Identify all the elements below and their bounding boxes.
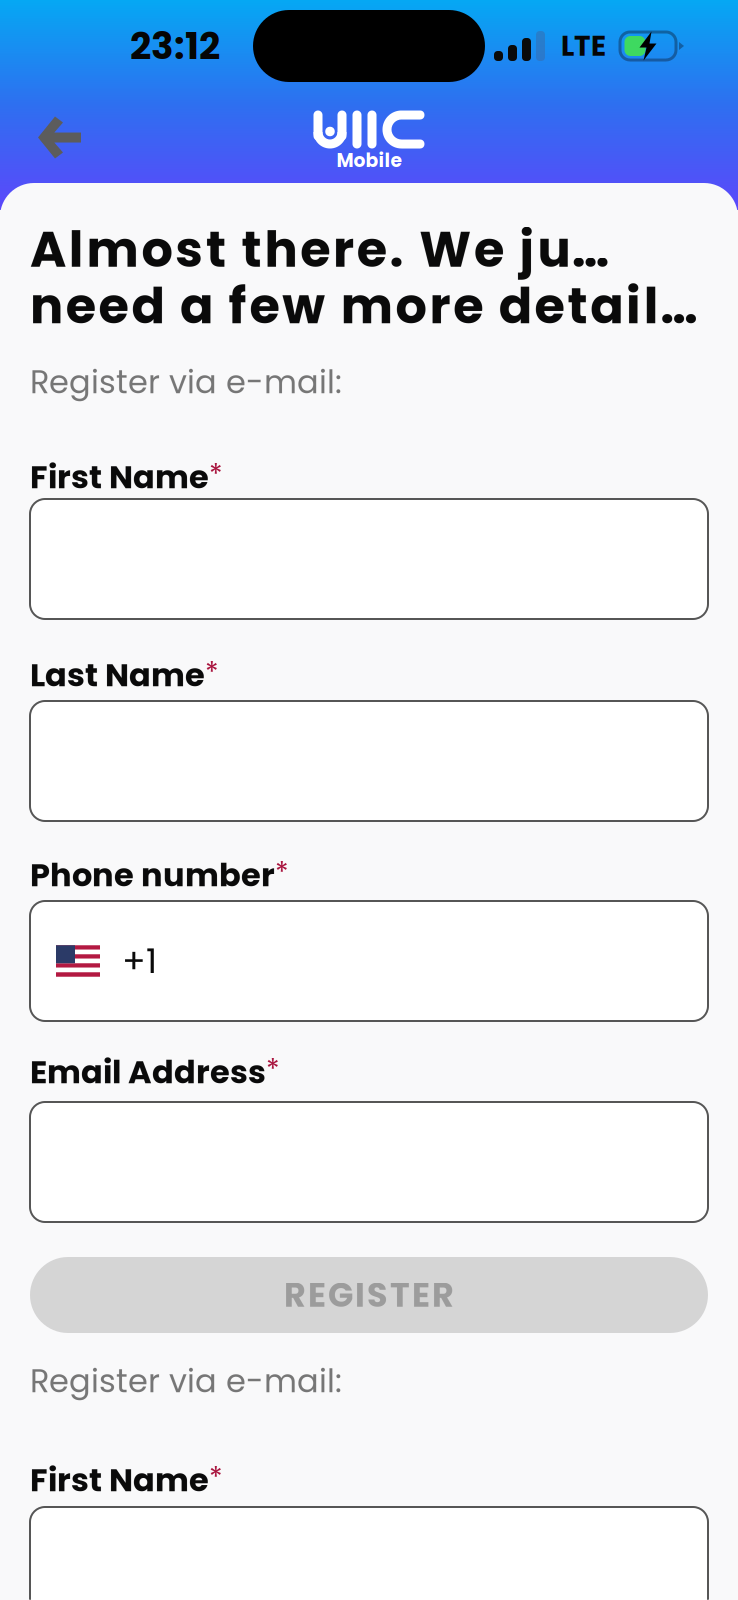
staticText: Almost there. We just <box>30 215 621 284</box>
staticText: Email Address <box>30 1050 266 1094</box>
staticText: +1 <box>122 937 157 985</box>
staticText: REGISTER <box>284 1272 454 1318</box>
staticText: Last Name <box>30 653 205 697</box>
staticText: Register via e-mail: <box>30 360 342 404</box>
staticText: Mobile <box>336 147 401 173</box>
staticText: * <box>275 853 289 892</box>
button[interactable]: Back <box>16 94 102 180</box>
staticText: need a few more details. <box>30 271 704 341</box>
button[interactable]: REGISTER <box>30 1257 708 1333</box>
staticText: First Name <box>30 455 209 499</box>
staticText: Register via e-mail: <box>30 1359 342 1403</box>
staticText: 23:12 <box>130 20 220 72</box>
staticText: * <box>266 1050 280 1089</box>
staticText: * <box>209 1458 223 1497</box>
staticText: LTE <box>561 26 606 66</box>
staticText: First Name <box>30 1458 209 1502</box>
staticText: * <box>209 455 223 494</box>
staticText: Phone number <box>30 853 275 897</box>
staticText: * <box>205 653 219 692</box>
